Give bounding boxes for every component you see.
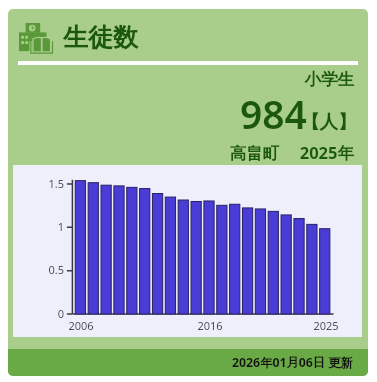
button[interactable]: School students [8,9,368,61]
staticText: 0 [13,306,64,321]
staticText: 1.5 [13,176,64,191]
staticText: 小学生 [8,69,354,90]
staticText: 生徒数 [63,22,138,53]
staticText: 高畠町 2025年 [8,141,354,164]
staticText: 【人】 [301,110,357,133]
other: School students [19,23,53,55]
staticText: 1 [13,219,64,234]
staticText: 984 [240,87,307,140]
staticText: 2025 [306,318,346,333]
staticText: 0.5 [13,262,64,277]
button[interactable]: 2026年01月06日 更新 [8,349,368,376]
staticText: 2016 [190,318,230,333]
staticText: 2026年01月06日 更新 [232,354,353,371]
staticText: 2006 [61,318,101,333]
button[interactable]: 1.5 [13,165,362,337]
